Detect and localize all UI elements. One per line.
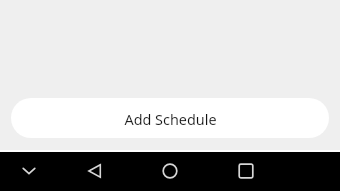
button[interactable]: Home <box>151 152 189 190</box>
button[interactable]: Hide keyboard <box>10 152 48 190</box>
button[interactable]: Add Schedule <box>11 98 329 138</box>
button[interactable]: Recent apps <box>227 152 265 190</box>
button[interactable]: Back <box>75 152 113 190</box>
staticText: Add Schedule <box>124 110 217 130</box>
